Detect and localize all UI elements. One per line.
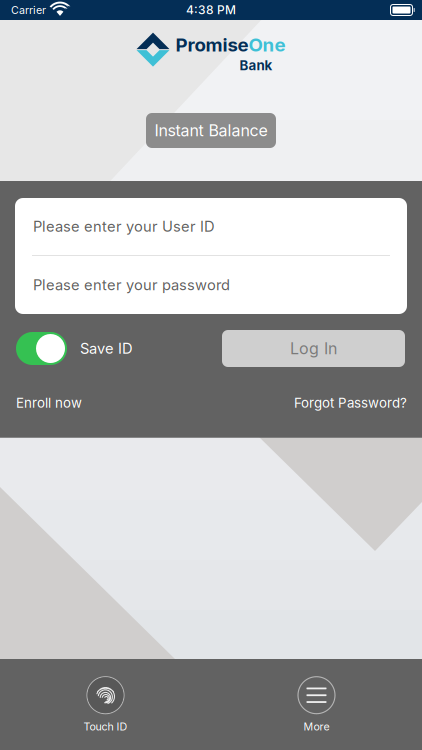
staticText: Enroll now — [16, 395, 82, 411]
staticText: Forgot Password? — [294, 395, 407, 411]
staticText: Save ID — [80, 340, 133, 357]
staticText: Instant Balance — [154, 121, 267, 140]
button[interactable]: More — [211, 676, 422, 733]
staticText: More — [303, 720, 329, 733]
button[interactable]: Enroll now — [16, 395, 82, 411]
staticText: Promise — [175, 34, 248, 56]
staticText: Touch ID — [83, 720, 127, 733]
button[interactable]: Touch ID — [0, 676, 211, 733]
button[interactable]: Log In — [222, 330, 405, 367]
staticText: Please enter your User ID — [33, 218, 215, 235]
staticText: Log In — [290, 339, 337, 358]
button[interactable]: Instant Balance — [146, 113, 276, 148]
staticText: One — [248, 34, 285, 56]
staticText: Bank — [239, 58, 272, 73]
staticText: Please enter your password — [33, 276, 230, 294]
button[interactable]: Save ID — [16, 332, 133, 365]
staticText: 4:38 PM — [186, 3, 236, 17]
button[interactable]: Forgot Password? — [294, 395, 407, 411]
staticText: Carrier — [11, 4, 46, 16]
